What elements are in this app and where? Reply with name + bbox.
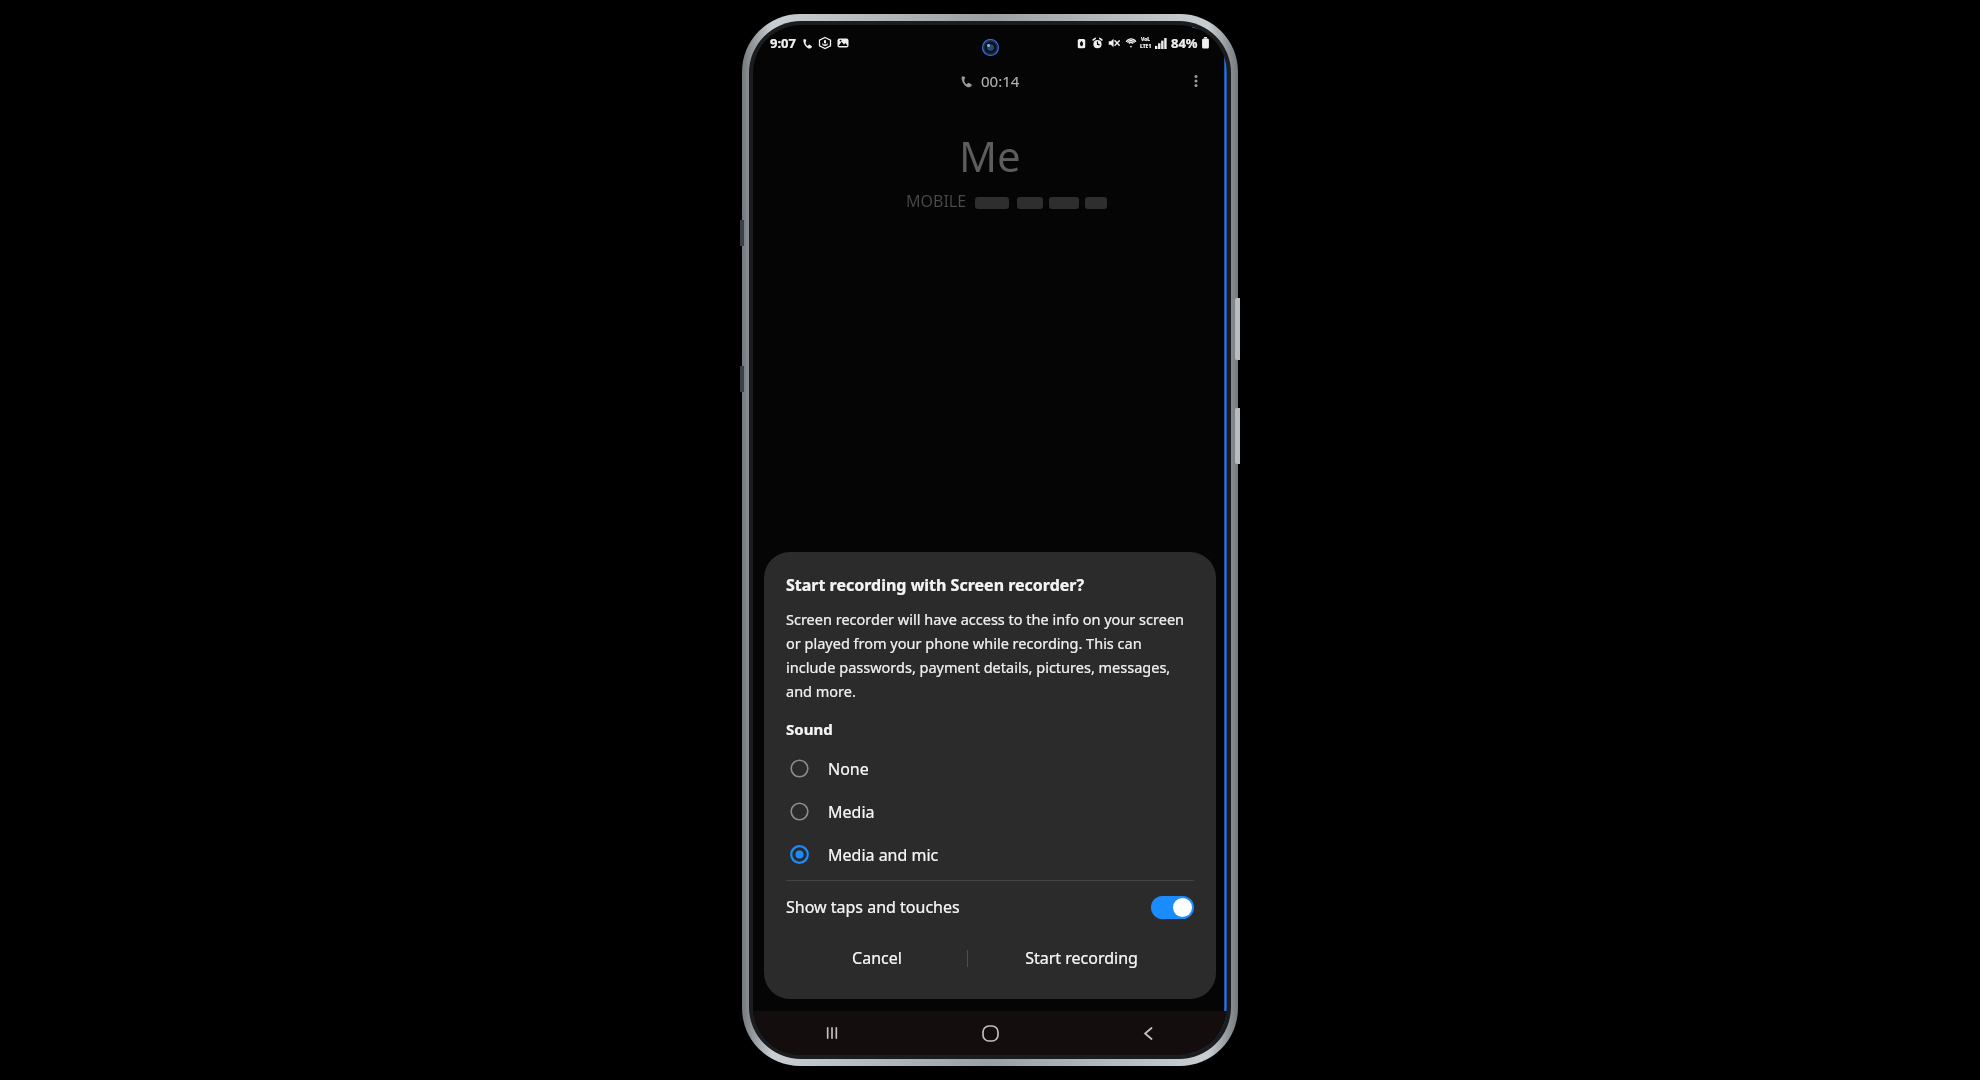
staticText: Show taps and touches — [786, 896, 960, 918]
staticText: Me — [959, 127, 1021, 184]
button[interactable]: More options — [1179, 64, 1213, 98]
staticText: Screen recorder will have access to the … — [786, 609, 1194, 701]
button[interactable]: Show taps and touches — [786, 881, 1194, 933]
staticText: None — [828, 758, 869, 780]
staticText: LTE1 — [1140, 43, 1152, 50]
staticText: Start recording with Screen recorder? — [786, 574, 1085, 596]
button[interactable]: Start recording — [968, 933, 1194, 983]
button[interactable]: Media — [786, 790, 1194, 833]
staticText: Start recording — [1025, 947, 1138, 969]
button[interactable]: None — [786, 747, 1194, 790]
staticText: Cancel — [852, 947, 902, 969]
staticText: Sound — [786, 719, 833, 739]
staticText: 9:07 — [770, 34, 796, 52]
staticText: 84% — [1171, 34, 1198, 52]
button[interactable]: Home — [911, 1011, 1069, 1055]
staticText: Media — [828, 801, 875, 823]
button[interactable]: Cancel — [786, 933, 967, 983]
button[interactable]: Recent apps — [753, 1011, 911, 1055]
button[interactable]: Back — [1069, 1011, 1227, 1055]
staticText: Media and mic — [828, 844, 939, 866]
staticText: 00:14 — [981, 71, 1020, 91]
button[interactable]: Media and mic — [786, 833, 1194, 876]
staticText: MOBILE — [906, 190, 967, 212]
staticText: VoL — [1141, 36, 1151, 43]
